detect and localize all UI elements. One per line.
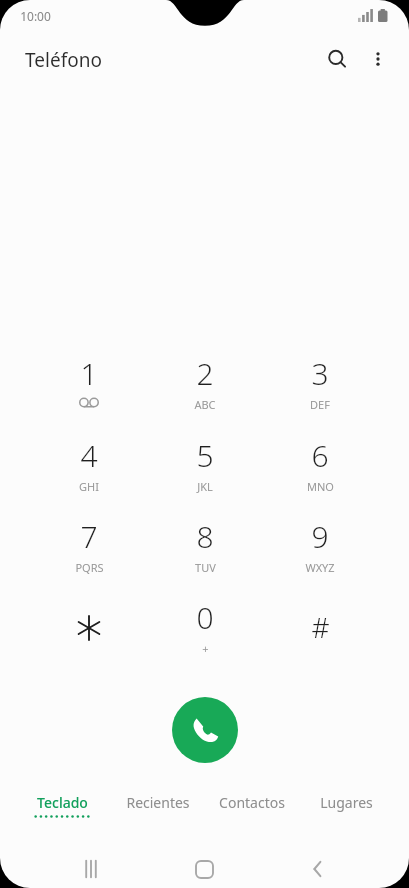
staticText: 6 [311,435,329,476]
button[interactable]: 1 [33,350,145,428]
button[interactable]: Call [172,697,238,763]
button[interactable]: 6 [264,432,376,510]
button[interactable]: Lugares [305,793,387,827]
staticText: Recientes [126,793,190,812]
button[interactable]: Recientes [109,793,207,827]
button[interactable]: Contactos [203,793,301,827]
staticText: 2 [196,353,214,394]
button[interactable]: Recents [69,847,113,888]
staticText: Lugares [320,793,373,812]
staticText: 0 [196,597,214,638]
staticText: # [311,608,330,646]
button[interactable]: 9 [264,513,376,591]
staticText: Contactos [219,793,285,812]
button[interactable] [33,594,145,672]
button[interactable]: 8 [149,513,261,591]
staticText: JKL [197,479,213,494]
staticText: 10:00 [20,8,51,24]
button[interactable]: # [264,594,376,672]
button[interactable]: 4 [33,432,145,510]
button[interactable]: Search [319,41,355,77]
staticText: 9 [311,516,329,557]
staticText: Teclado [37,793,88,812]
staticText: 1 [80,353,98,394]
staticText: 4 [80,435,98,476]
button[interactable]: Home [182,847,226,888]
staticText: MNO [307,479,334,494]
staticText: WXYZ [305,560,335,575]
staticText: 7 [80,516,98,557]
button[interactable]: More options [360,41,396,77]
staticText: ABC [194,397,216,412]
button[interactable]: Back [296,847,340,888]
staticText: GHI [79,479,99,494]
staticText: 8 [196,516,214,557]
button[interactable]: Teclado [23,793,101,827]
staticText: 3 [311,353,329,394]
staticText: DEF [310,397,330,412]
staticText: TUV [195,560,216,575]
button[interactable]: 5 [149,432,261,510]
button[interactable]: 2 [149,350,261,428]
button[interactable]: 0 [149,594,261,672]
staticText: Teléfono [25,47,102,73]
button[interactable]: 7 [33,513,145,591]
staticText: + [202,641,209,656]
staticText: PQRS [75,560,104,575]
button[interactable]: 3 [264,350,376,428]
staticText: 5 [196,435,214,476]
